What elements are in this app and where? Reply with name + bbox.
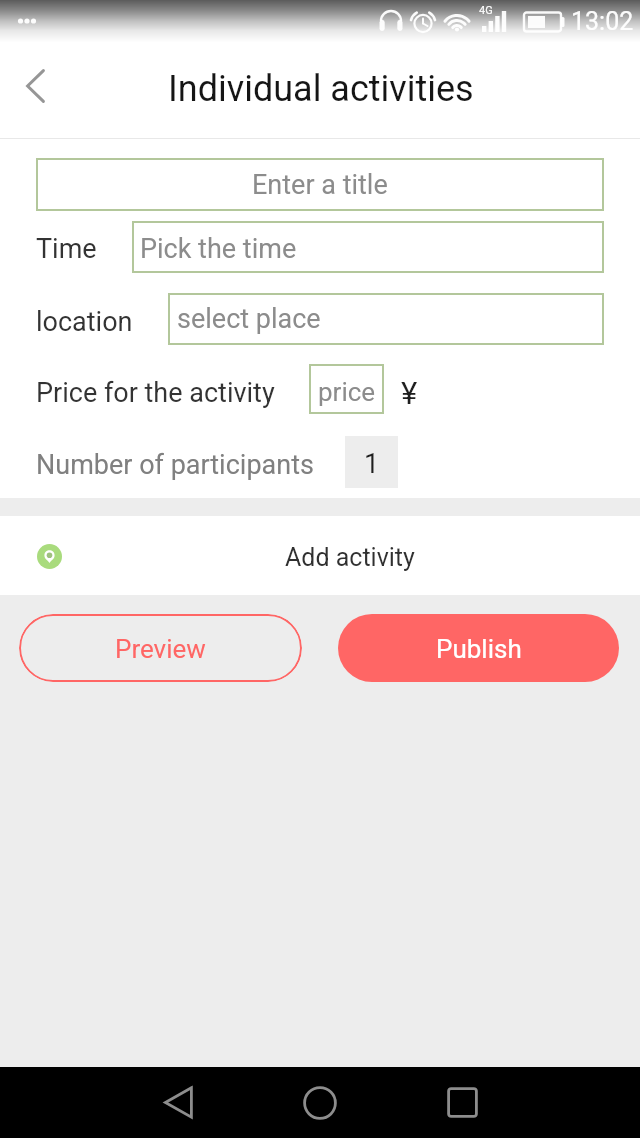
- staticText: ¥: [401, 375, 418, 411]
- staticText: Add activity: [285, 543, 415, 572]
- button[interactable]: Recent apps: [424, 1067, 500, 1138]
- button[interactable]: Back: [0, 44, 74, 139]
- staticText: price: [318, 377, 376, 407]
- button[interactable]: Home: [282, 1067, 358, 1138]
- staticText: Publish: [436, 634, 522, 664]
- staticText: Enter a title: [252, 169, 388, 201]
- staticText: location: [36, 306, 133, 338]
- staticText: Price for the activity: [36, 377, 275, 409]
- button[interactable]: Publish: [338, 614, 619, 682]
- staticText: 1: [364, 448, 380, 480]
- button[interactable]: Add activity: [0, 516, 640, 595]
- button[interactable]: Preview: [19, 614, 302, 682]
- staticText: Individual activities: [168, 68, 474, 110]
- staticText: Time: [36, 233, 97, 265]
- button[interactable]: 1: [345, 436, 398, 488]
- staticText: Pick the time: [140, 233, 297, 265]
- button[interactable]: Pick the time: [132, 221, 604, 273]
- button[interactable]: select place: [168, 293, 604, 345]
- button[interactable]: price: [309, 364, 384, 414]
- button[interactable]: Back: [140, 1067, 216, 1138]
- button[interactable]: Enter a title: [36, 158, 604, 211]
- staticText: Preview: [115, 634, 206, 664]
- staticText: 13:02: [571, 7, 634, 36]
- staticText: Number of participants: [36, 449, 314, 481]
- staticText: 4G: [479, 4, 493, 17]
- staticText: select place: [177, 303, 321, 335]
